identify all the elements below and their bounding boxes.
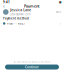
button[interactable]: Back <box>2 4 6 8</box>
staticText: ▮▮ <box>59 0 61 3</box>
staticText: Visa ···· 4821 <box>7 22 26 25</box>
staticText: › <box>60 21 61 26</box>
staticText: ‹ <box>3 2 5 10</box>
staticText: Jessica Lane <box>10 8 31 12</box>
button[interactable]: Visa ···· 4821 <box>0 21 64 26</box>
button[interactable]: Continue <box>5 64 59 69</box>
staticText: Payment method <box>3 17 29 20</box>
staticText: Edit <box>56 10 61 14</box>
button[interactable]: Jessica Lane <box>0 8 64 16</box>
staticText: Payment <box>24 3 40 9</box>
staticText: 9:41 <box>3 0 10 4</box>
staticText: jessica@mail.com <box>10 13 30 16</box>
staticText: By continuing you agree to the Terms <box>13 60 50 63</box>
staticText: Continue <box>25 65 39 69</box>
